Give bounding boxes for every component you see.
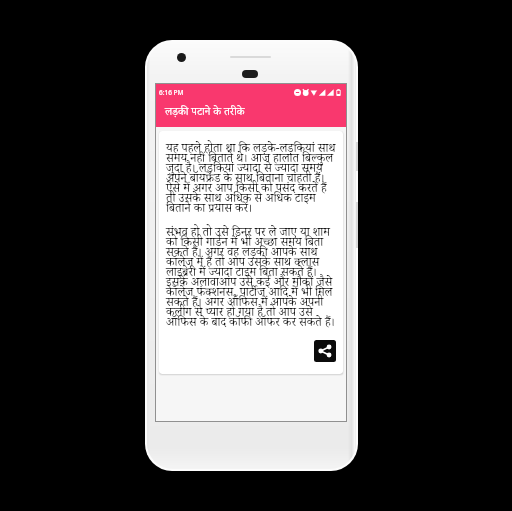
button[interactable]: यह पहले होता था कि लड़के-लड़कियां साथ सम… (159, 131, 343, 374)
staticText: संभव हो तो उसे डिनर पर ले जाए या शाम को … (166, 225, 338, 334)
button[interactable]: Share (314, 340, 336, 362)
staticText: 6:16 PM (159, 88, 184, 97)
staticText: लड़की पटाने के तरीके (165, 105, 245, 122)
staticText: यह पहले होता था कि लड़के-लड़कियां साथ सम… (166, 141, 338, 220)
